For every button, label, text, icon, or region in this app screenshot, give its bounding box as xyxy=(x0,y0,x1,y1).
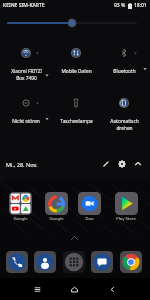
button[interactable]: Mobile Daten xyxy=(50,43,102,87)
button[interactable]: Back xyxy=(103,278,121,300)
button[interactable]: Play Store xyxy=(109,192,143,222)
staticText: Google xyxy=(13,216,28,222)
staticText: Mobile Daten xyxy=(61,68,92,75)
button[interactable]: CONTACTS xyxy=(34,251,56,273)
button[interactable]: PHONE xyxy=(6,251,28,273)
button[interactable]: Google xyxy=(39,192,73,222)
button[interactable]: DRAWER xyxy=(63,251,85,273)
button[interactable]: Duo xyxy=(72,192,106,222)
staticText: 18:01 xyxy=(134,2,147,9)
button[interactable]: Brightness xyxy=(0,0,150,34)
staticText: Bluetooth xyxy=(113,68,136,75)
button[interactable]: MESSAGES xyxy=(91,251,113,273)
button[interactable]: Recents xyxy=(28,278,46,300)
staticText: Nicht stören xyxy=(12,118,40,125)
button[interactable]: Taschenlampe xyxy=(50,93,102,137)
button[interactable]: Collapse xyxy=(130,156,146,172)
button[interactable]: Automatisch xyxy=(98,93,150,137)
button[interactable]: Home xyxy=(65,278,83,300)
button[interactable]: Edit xyxy=(98,156,114,172)
staticText: 93 % xyxy=(114,2,126,9)
staticText: Google xyxy=(49,216,64,222)
button[interactable]: Google xyxy=(3,192,37,222)
button[interactable]: Nicht stören xyxy=(0,93,52,137)
staticText: Xiaomi FRITZ! xyxy=(11,68,42,75)
staticText: Automatisch xyxy=(110,118,139,125)
staticText: Play Store xyxy=(116,216,136,222)
staticText: Taschenlampe xyxy=(60,118,93,125)
button[interactable]: Xiaomi FRITZ! xyxy=(0,43,52,87)
staticText: Box 7490 xyxy=(16,75,37,82)
button[interactable]: Bluetooth xyxy=(98,43,150,87)
staticText: Mi., 28. Nov. xyxy=(6,161,38,168)
staticText: drehen xyxy=(116,125,133,132)
button[interactable]: CHROME xyxy=(120,251,142,273)
staticText: KEINE SIM-KARTE xyxy=(3,2,45,9)
button[interactable]: Settings xyxy=(114,156,130,172)
staticText: Duo xyxy=(85,216,94,222)
